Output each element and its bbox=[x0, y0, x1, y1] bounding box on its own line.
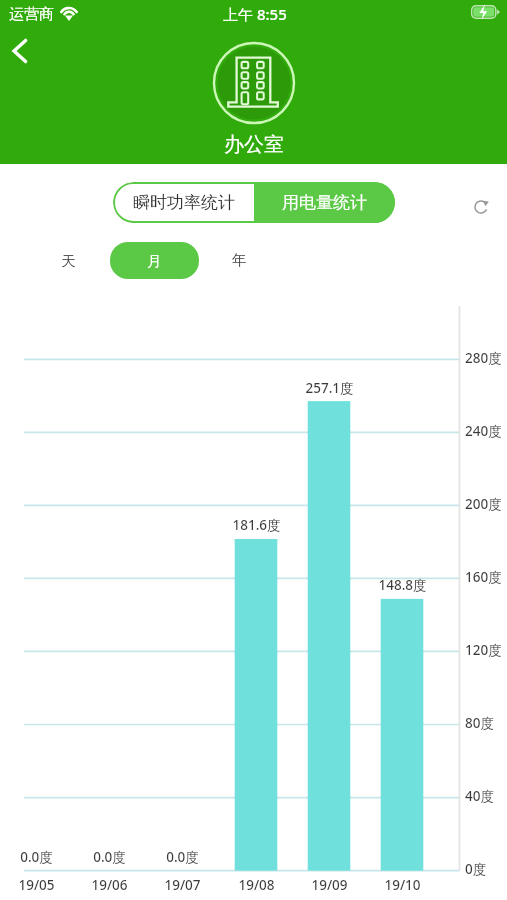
staticText: 0.0度 bbox=[20, 848, 53, 866]
button[interactable]: Refresh bbox=[467, 193, 495, 221]
button[interactable]: 月 bbox=[110, 242, 199, 279]
staticText: 19/08 bbox=[238, 876, 275, 894]
button[interactable]: 瞬时功率统计 bbox=[113, 182, 254, 223]
staticText: 181.6度 bbox=[232, 516, 281, 534]
staticText: 瞬时功率统计 bbox=[133, 192, 235, 213]
staticText: 19/06 bbox=[91, 876, 128, 894]
staticText: 运营商 bbox=[9, 5, 54, 24]
staticText: 天 bbox=[61, 252, 76, 270]
button[interactable]: 年 bbox=[219, 242, 259, 278]
button[interactable]: 用电量统计 bbox=[254, 182, 395, 223]
staticText: 19/10 bbox=[384, 876, 421, 894]
button[interactable]: Back bbox=[1, 31, 41, 71]
staticText: 办公室 bbox=[224, 132, 284, 157]
staticText: 148.8度 bbox=[378, 576, 427, 594]
staticText: 0.0度 bbox=[93, 848, 126, 866]
staticText: 120度 bbox=[465, 641, 502, 659]
staticText: 19/09 bbox=[311, 876, 348, 894]
staticText: 上午 8:55 bbox=[223, 4, 287, 24]
staticText: 160度 bbox=[465, 568, 502, 586]
staticText: 0度 bbox=[465, 860, 487, 878]
staticText: 年 bbox=[232, 251, 247, 269]
staticText: 用电量统计 bbox=[282, 192, 367, 213]
staticText: 280度 bbox=[465, 349, 502, 367]
staticText: 0.0度 bbox=[166, 848, 199, 866]
staticText: 257.1度 bbox=[305, 379, 354, 397]
staticText: 240度 bbox=[465, 422, 502, 440]
button[interactable]: 天 bbox=[48, 243, 88, 279]
staticText: 200度 bbox=[465, 495, 502, 513]
staticText: 19/05 bbox=[18, 876, 55, 894]
staticText: 19/07 bbox=[164, 876, 201, 894]
staticText: 80度 bbox=[465, 714, 494, 732]
staticText: 40度 bbox=[465, 787, 494, 805]
staticText: 月 bbox=[147, 252, 162, 270]
